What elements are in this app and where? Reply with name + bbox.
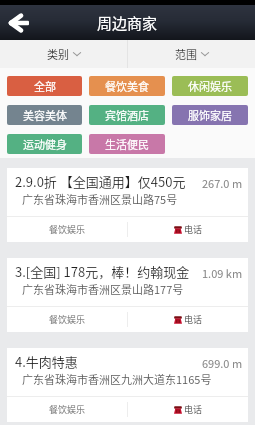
button[interactable]: 类别 bbox=[0, 40, 127, 68]
staticText: 广东省珠海市香洲区九洲大道东1165号 bbox=[22, 371, 212, 387]
staticText: 广东省珠海市香洲区景山路177号 bbox=[22, 281, 184, 297]
button[interactable]: 生活便民 bbox=[89, 134, 165, 154]
button[interactable]: 运动健身 bbox=[7, 134, 82, 154]
button[interactable]: Call bbox=[128, 307, 248, 332]
button[interactable]: 餐饮娱乐 bbox=[7, 397, 127, 422]
staticText: 餐饮娱乐 bbox=[49, 403, 86, 416]
staticText: 餐饮娱乐 bbox=[49, 313, 86, 326]
staticText: 休闲娱乐 bbox=[188, 78, 232, 94]
staticText: 2.9.0折 【全国通用】仅450元 bbox=[15, 172, 198, 191]
staticText: 运动健身 bbox=[23, 136, 67, 152]
staticText: 生活便民 bbox=[105, 136, 149, 152]
staticText: 1.09 km bbox=[202, 265, 243, 281]
staticText: 全部 bbox=[34, 78, 56, 94]
staticText: 服饰家居 bbox=[188, 107, 232, 123]
staticText: 电话 bbox=[184, 313, 203, 326]
staticText: 3.[全国] 178元，棒！约翰现金卡 bbox=[15, 262, 198, 281]
staticText: 餐饮美食 bbox=[105, 78, 149, 94]
staticText: 4.牛肉特惠 bbox=[15, 352, 198, 371]
other: Call bbox=[174, 226, 182, 234]
staticText: 699.0 m bbox=[202, 355, 243, 371]
button[interactable]: 餐饮娱乐 bbox=[7, 217, 127, 242]
button[interactable]: Call bbox=[128, 397, 248, 422]
staticText: 类别 bbox=[47, 46, 69, 62]
staticText: 美容美体 bbox=[23, 107, 67, 123]
button[interactable]: 2.9.0折 【全国通用】仅450元 bbox=[7, 168, 248, 242]
button[interactable]: 餐饮美食 bbox=[89, 76, 165, 96]
button[interactable]: 宾馆酒店 bbox=[89, 105, 165, 125]
button[interactable]: Back bbox=[0, 5, 37, 40]
button[interactable]: 全部 bbox=[7, 76, 82, 96]
staticText: 267.0 m bbox=[202, 175, 243, 191]
staticText: 电话 bbox=[184, 403, 203, 416]
staticText: 电话 bbox=[184, 223, 203, 236]
button[interactable]: 休闲娱乐 bbox=[172, 76, 248, 96]
staticText: 宾馆酒店 bbox=[105, 107, 149, 123]
staticText: 广东省珠海市香洲区景山路75号 bbox=[22, 191, 178, 207]
button[interactable]: 服饰家居 bbox=[172, 105, 248, 125]
button[interactable]: 3.[全国] 178元，棒！约翰现金卡 bbox=[7, 258, 248, 332]
staticText: 周边商家 bbox=[97, 12, 158, 34]
button[interactable]: 4.牛肉特惠 bbox=[7, 348, 248, 422]
button[interactable]: Call bbox=[128, 217, 248, 242]
other: Call bbox=[174, 316, 182, 324]
button[interactable]: 范围 bbox=[128, 40, 255, 68]
staticText: 范围 bbox=[175, 46, 197, 62]
button[interactable]: 餐饮娱乐 bbox=[7, 307, 127, 332]
button[interactable]: 美容美体 bbox=[7, 105, 82, 125]
staticText: 餐饮娱乐 bbox=[49, 223, 86, 236]
other: Call bbox=[174, 406, 182, 414]
